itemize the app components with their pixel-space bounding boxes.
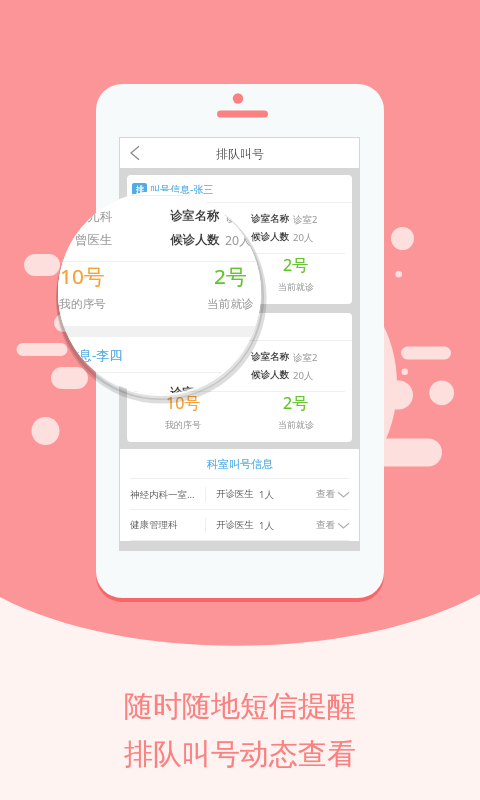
staticText: 10号 xyxy=(166,254,201,276)
button[interactable]: 排 xyxy=(127,313,352,442)
staticText: 诊室2 xyxy=(293,351,318,364)
staticText: 小儿科 xyxy=(75,386,113,394)
button[interactable]: 排 xyxy=(58,191,261,326)
staticText: 诊室名称 xyxy=(170,208,220,224)
button[interactable]: 排 xyxy=(58,337,261,394)
staticText: 查看 xyxy=(316,519,335,531)
staticText: 叫号信息-张三 xyxy=(150,182,214,196)
staticText: 诊室2 xyxy=(225,208,257,225)
staticText: 诊室2 xyxy=(225,385,257,394)
staticText: 2号 xyxy=(283,392,309,414)
staticText: 当前就诊 xyxy=(278,281,314,292)
staticText: 排 xyxy=(136,322,144,332)
staticText: 科室叫号信息 xyxy=(207,457,273,471)
staticText: 2号 xyxy=(214,262,247,290)
staticText: 2号 xyxy=(283,254,309,276)
button[interactable]: 排 xyxy=(127,175,352,304)
staticText: 小儿科 xyxy=(75,209,113,225)
staticText: 诊室名称 xyxy=(170,385,220,394)
staticText: 诊室名称 xyxy=(251,351,289,363)
staticText: 曾医生 xyxy=(75,232,113,248)
staticText: 神经内科一室... xyxy=(130,488,198,501)
staticText: 曾医生 xyxy=(178,369,207,381)
staticText: 当前就诊 xyxy=(207,297,254,312)
staticText: 候诊人数 xyxy=(251,231,289,243)
staticText: 1人 xyxy=(259,488,274,501)
staticText: 开诊医生 xyxy=(216,488,254,500)
staticText: 开诊医生 xyxy=(216,519,254,531)
staticText: 诊室2 xyxy=(293,213,318,226)
staticText: 我的序号 xyxy=(165,419,201,430)
staticText: 排队叫号 xyxy=(216,146,264,161)
staticText: 候诊人数 xyxy=(170,232,220,248)
staticText: 10号 xyxy=(60,262,105,290)
staticText: 叫号信息-李四 xyxy=(58,346,123,364)
staticText: 10号 xyxy=(166,392,201,414)
staticText: 曾医生 xyxy=(178,231,207,243)
staticText: 候诊人数 xyxy=(251,369,289,381)
staticText: 我的序号 xyxy=(59,297,106,312)
staticText: 20人 xyxy=(293,231,314,244)
button[interactable]: 神经内科一室... xyxy=(120,479,359,509)
staticText: 20人 xyxy=(293,369,314,382)
button[interactable]: Back xyxy=(120,138,150,168)
staticText: 1人 xyxy=(259,519,274,532)
staticText: 当前就诊 xyxy=(278,419,314,430)
button[interactable]: 健康管理科 xyxy=(120,510,359,540)
staticText: 小儿科 xyxy=(178,214,207,226)
staticText: 诊室名称 xyxy=(251,213,289,225)
staticText: 查看 xyxy=(316,488,335,500)
staticText: 随时随地短信提醒 xyxy=(124,688,356,725)
staticText: 排 xyxy=(136,184,144,194)
staticText: 排队叫号动态查看 xyxy=(124,736,356,773)
staticText: 叫号信息-李四 xyxy=(150,320,214,334)
staticText: 健康管理科 xyxy=(130,519,198,531)
staticText: 20人 xyxy=(225,232,252,249)
